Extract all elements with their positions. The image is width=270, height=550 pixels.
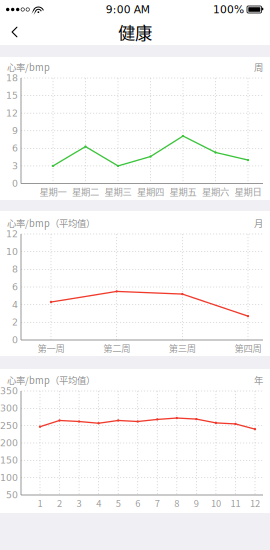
staticText: 5 bbox=[116, 496, 121, 510]
staticText: 250 bbox=[0, 420, 18, 431]
staticText: 9 bbox=[194, 496, 199, 510]
staticText: 9 bbox=[12, 125, 18, 136]
staticText: 心率/bmp（平均值） bbox=[7, 373, 95, 387]
staticText: 星期一 bbox=[39, 185, 66, 198]
staticText: 3 bbox=[12, 160, 18, 171]
staticText: 12 bbox=[6, 108, 18, 119]
staticText: 300 bbox=[0, 403, 18, 414]
staticText: 10 bbox=[6, 246, 18, 257]
staticText: 8 bbox=[174, 496, 179, 510]
staticText: 第二周 bbox=[103, 341, 130, 355]
button[interactable]: Back bbox=[2, 19, 28, 45]
staticText: 1 bbox=[37, 496, 42, 510]
staticText: 星期三 bbox=[104, 185, 131, 198]
staticText: 6 bbox=[12, 143, 18, 154]
staticText: 心率/bmp bbox=[7, 60, 50, 74]
staticText: 星期二 bbox=[72, 185, 99, 198]
staticText: 200 bbox=[0, 438, 18, 448]
staticText: 周 bbox=[254, 60, 263, 74]
staticText: 0 bbox=[12, 178, 18, 189]
staticText: 心率/bmp（平均值） bbox=[7, 216, 95, 230]
staticText: 4 bbox=[12, 299, 18, 310]
staticText: 2 bbox=[12, 317, 18, 328]
staticText: 第三周 bbox=[169, 341, 196, 355]
staticText: 350 bbox=[0, 386, 18, 396]
staticText: 星期四 bbox=[137, 185, 164, 198]
staticText: 6 bbox=[135, 496, 140, 510]
staticText: 9:00 AM bbox=[106, 3, 150, 16]
staticText: 7 bbox=[155, 496, 160, 510]
staticText: 0 bbox=[12, 335, 18, 345]
staticText: 健康 bbox=[118, 19, 152, 45]
staticText: 年 bbox=[254, 373, 263, 387]
staticText: 8 bbox=[12, 264, 18, 275]
staticText: 15 bbox=[6, 90, 18, 101]
staticText: 星期六 bbox=[202, 185, 229, 198]
staticText: 2 bbox=[57, 496, 62, 510]
staticText: 100 bbox=[0, 472, 18, 483]
staticText: 6 bbox=[12, 282, 18, 292]
staticText: 星期五 bbox=[169, 185, 196, 198]
staticText: 4 bbox=[96, 496, 101, 510]
staticText: 100% bbox=[213, 3, 244, 16]
staticText: 150 bbox=[0, 455, 18, 466]
staticText: 50 bbox=[6, 490, 18, 500]
staticText: 12 bbox=[250, 496, 260, 510]
staticText: 18 bbox=[6, 73, 18, 83]
staticText: 第四周 bbox=[234, 341, 261, 355]
staticText: 月 bbox=[254, 216, 263, 230]
staticText: 第一周 bbox=[37, 341, 64, 355]
staticText: 12 bbox=[6, 229, 18, 239]
staticText: 10 bbox=[211, 496, 221, 510]
staticText: 11 bbox=[230, 496, 240, 510]
staticText: 星期日 bbox=[234, 185, 261, 198]
staticText: 3 bbox=[77, 496, 82, 510]
